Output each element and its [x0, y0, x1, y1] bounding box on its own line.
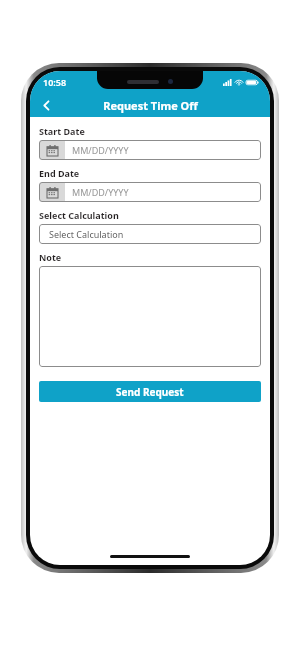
button[interactable]: Select Calculation: [39, 224, 261, 244]
button[interactable]: Send Request: [39, 381, 261, 402]
staticText: MM/DD/YYYY: [72, 144, 129, 156]
staticText: Request Time Off: [103, 98, 198, 113]
button[interactable]: MM/DD/YYYY: [39, 140, 261, 160]
staticText: Note: [39, 251, 62, 263]
staticText: Start Date: [39, 125, 85, 137]
staticText: Send Request: [116, 385, 184, 399]
staticText: Select Calculation: [49, 228, 124, 240]
staticText: MM/DD/YYYY: [72, 186, 129, 198]
button[interactable]: MM/DD/YYYY: [39, 182, 261, 202]
button[interactable]: [39, 266, 261, 367]
staticText: 10:58: [43, 76, 67, 88]
staticText: End Date: [39, 167, 80, 179]
staticText: Select Calculation: [39, 209, 119, 221]
button[interactable]: Back: [36, 95, 56, 115]
